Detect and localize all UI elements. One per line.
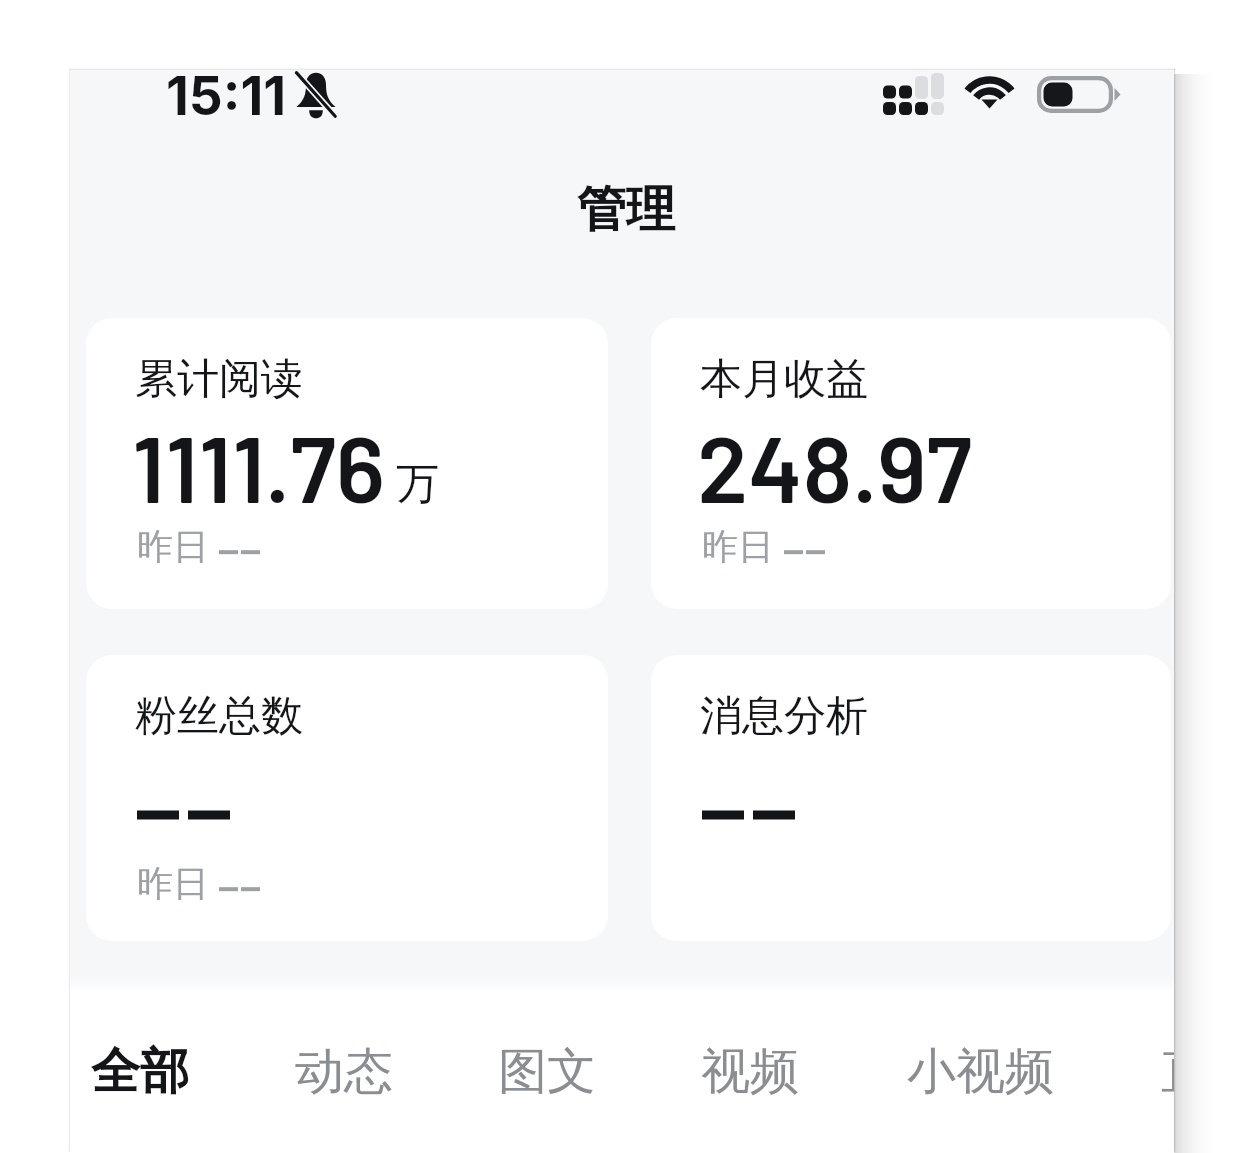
staticText: 本月收益 bbox=[700, 353, 868, 406]
button[interactable]: 直播 bbox=[1133, 1023, 1174, 1121]
other: Battery bbox=[1037, 76, 1121, 114]
button[interactable]: 本月收益 bbox=[651, 318, 1171, 609]
staticText: 万 bbox=[396, 457, 439, 511]
staticText: 昨日 bbox=[137, 861, 209, 906]
button[interactable]: 粉丝总数 bbox=[86, 655, 608, 941]
button[interactable]: 累计阅读 bbox=[86, 318, 608, 609]
staticText: 小视频 bbox=[907, 1041, 1054, 1103]
other: Wi-Fi bbox=[963, 71, 1016, 107]
staticText: 昨日 bbox=[702, 524, 774, 569]
button[interactable]: 动态 bbox=[267, 1023, 421, 1121]
button[interactable]: 全部 bbox=[70, 1023, 217, 1121]
staticText: 视频 bbox=[701, 1041, 799, 1103]
staticText: 248.97 bbox=[697, 410, 973, 522]
staticText: 昨日 bbox=[137, 524, 209, 569]
staticText: 15:11 bbox=[166, 70, 287, 128]
staticText: 图文 bbox=[498, 1041, 596, 1103]
button[interactable]: 视频 bbox=[673, 1023, 827, 1121]
staticText: 管理 bbox=[577, 179, 675, 241]
button[interactable]: 图文 bbox=[470, 1023, 624, 1121]
staticText: 直播 bbox=[1161, 1041, 1174, 1103]
staticText: 动态 bbox=[295, 1041, 393, 1103]
staticText: 粉丝总数 bbox=[135, 690, 303, 743]
staticText: 消息分析 bbox=[700, 690, 868, 743]
other: Signal strength bbox=[883, 73, 944, 115]
staticText: 1111.76 bbox=[132, 410, 385, 522]
button[interactable]: 小视频 bbox=[879, 1023, 1082, 1121]
staticText: 累计阅读 bbox=[135, 353, 303, 406]
staticText: 全部 bbox=[91, 1041, 189, 1103]
button[interactable]: 消息分析 bbox=[651, 655, 1171, 941]
other: Notifications muted bbox=[294, 71, 338, 118]
